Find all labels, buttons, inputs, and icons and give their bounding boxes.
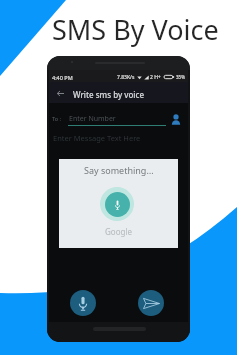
staticText: Google — [105, 226, 132, 237]
staticText: 7.83K/s — [117, 74, 135, 81]
button[interactable]: Speak message — [70, 290, 96, 316]
staticText: Write sms by voice — [73, 89, 145, 100]
button[interactable]: Enter Number — [68, 111, 166, 128]
button[interactable]: Back — [54, 87, 67, 100]
staticText: Enter Number — [69, 114, 116, 124]
staticText: 4:40 PM — [52, 74, 73, 81]
staticText: Enter Message Text Here — [53, 133, 141, 143]
button[interactable]: Pick contact — [168, 112, 183, 127]
button[interactable]: Send message — [138, 290, 164, 316]
staticText: 35% — [176, 74, 185, 80]
staticText: To : — [52, 115, 61, 122]
staticText: Say something… — [84, 164, 154, 176]
staticText: 2 H+ — [150, 74, 161, 81]
staticText: SMS By Voice — [52, 11, 219, 48]
button[interactable]: Microphone — [100, 187, 134, 221]
